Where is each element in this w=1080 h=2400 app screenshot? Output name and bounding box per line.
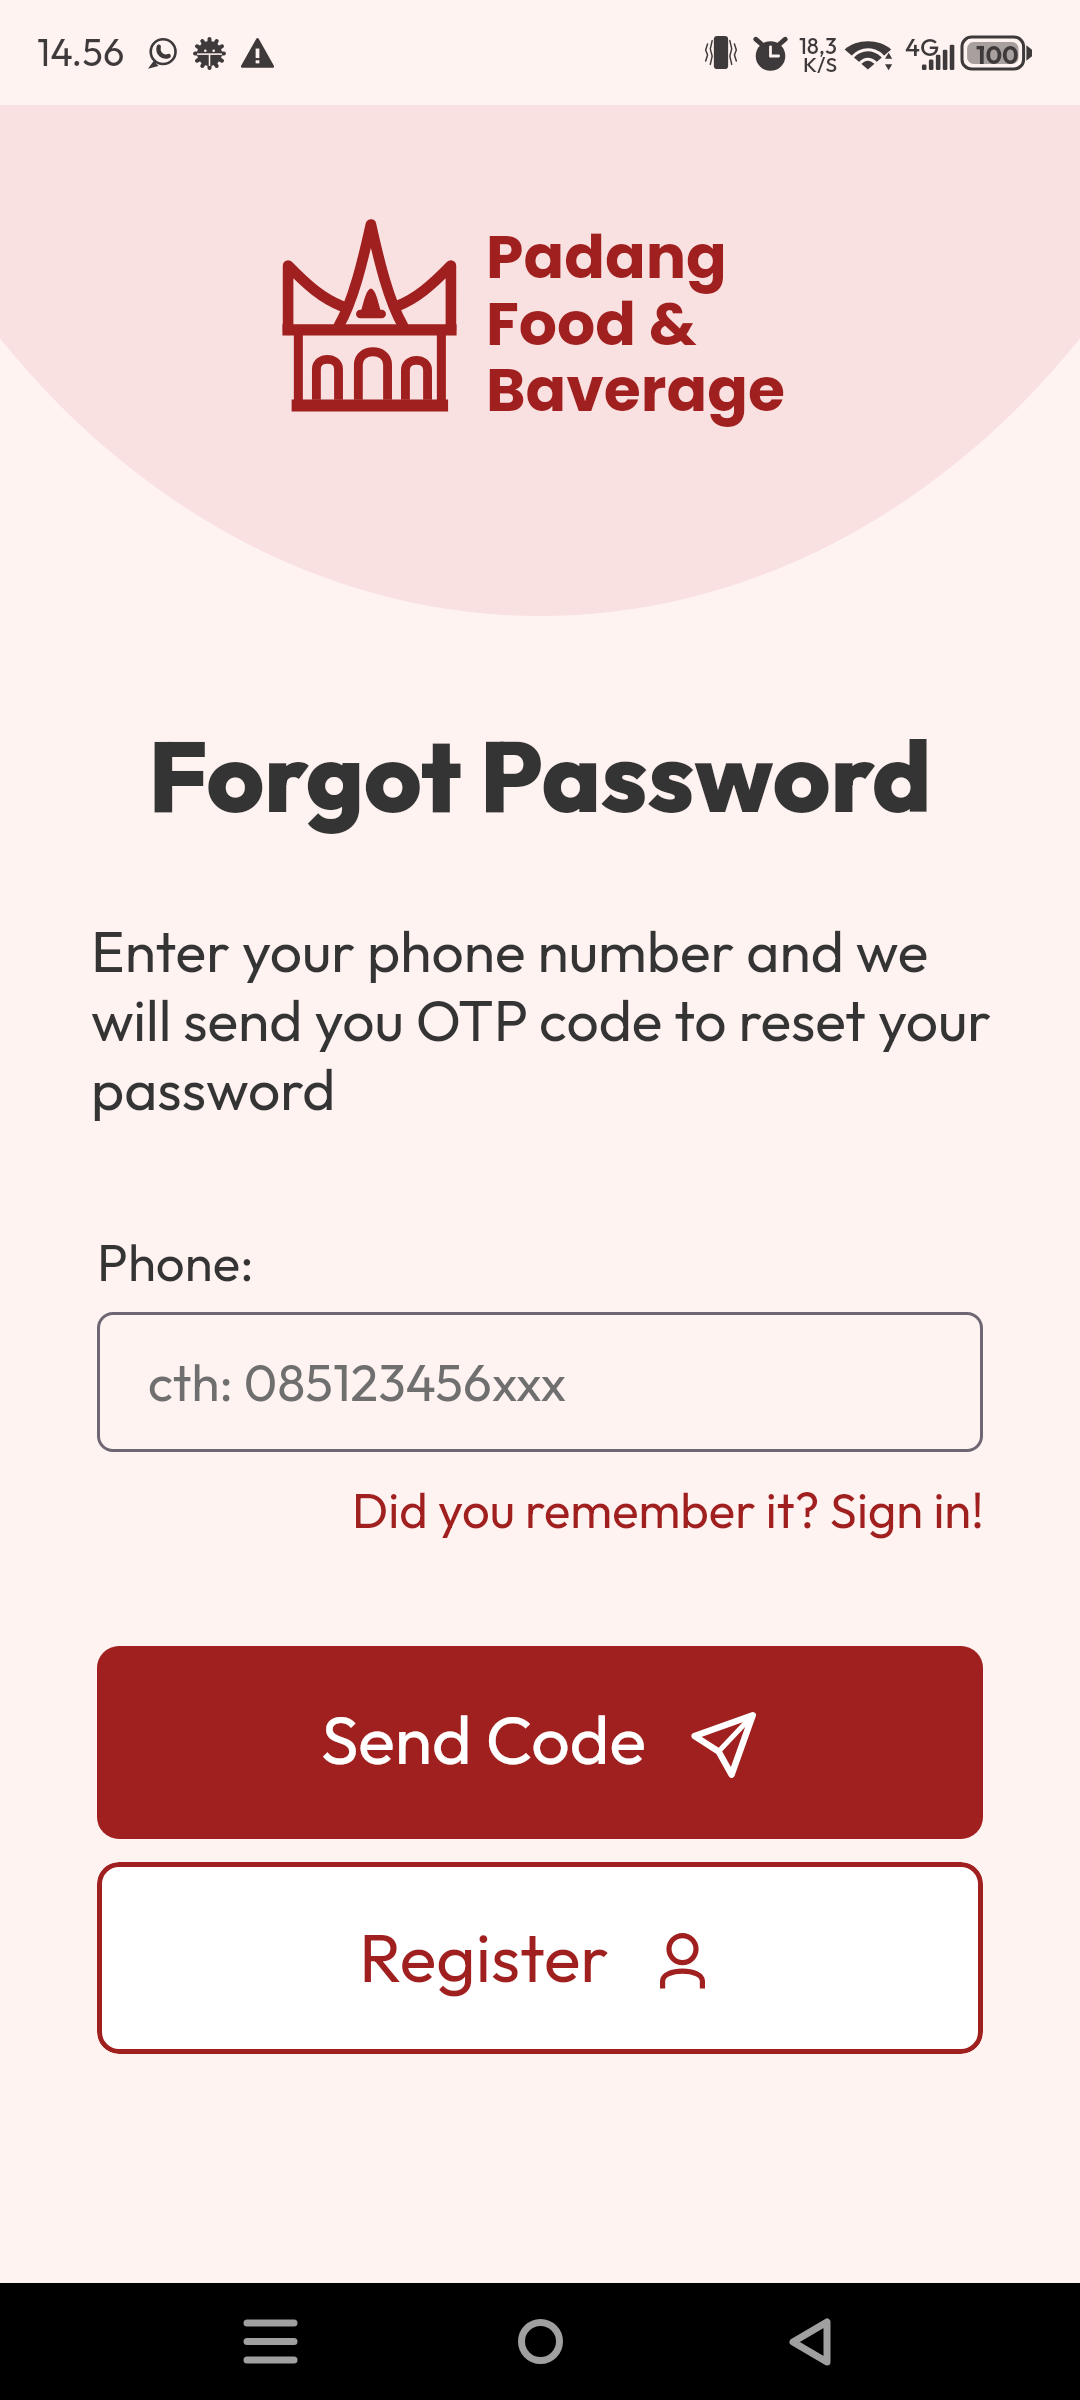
staticText: Register [359, 1914, 609, 2000]
staticText: Forgot Password [0, 713, 1080, 838]
button[interactable]: Register [97, 1862, 983, 2054]
staticText: cth: 085123456xxx [148, 1350, 567, 1414]
staticText: Food & [486, 282, 697, 366]
staticText: 14.56 [37, 28, 125, 76]
staticText: Send Code [321, 1696, 646, 1782]
button[interactable]: Send Code [97, 1646, 983, 1839]
staticText: K/S [803, 51, 838, 77]
button[interactable]: Home [495, 2283, 585, 2400]
staticText: 18,3 [799, 32, 837, 60]
staticText: Phone: [97, 1230, 254, 1294]
button[interactable]: Back [765, 2283, 855, 2400]
staticText: 4G [905, 31, 940, 63]
button[interactable]: Recents [225, 2283, 315, 2400]
staticText: 100 [976, 39, 1019, 71]
staticText: Did you remember it? Sign in! [352, 1479, 984, 1541]
button[interactable]: cth: 085123456xxx [97, 1312, 983, 1452]
button[interactable]: Did you remember it? Sign in! [330, 1475, 984, 1545]
staticText: Enter your phone number and we will send… [91, 915, 1011, 1125]
staticText: Baverage [486, 348, 785, 432]
staticText: Padang [486, 215, 727, 299]
